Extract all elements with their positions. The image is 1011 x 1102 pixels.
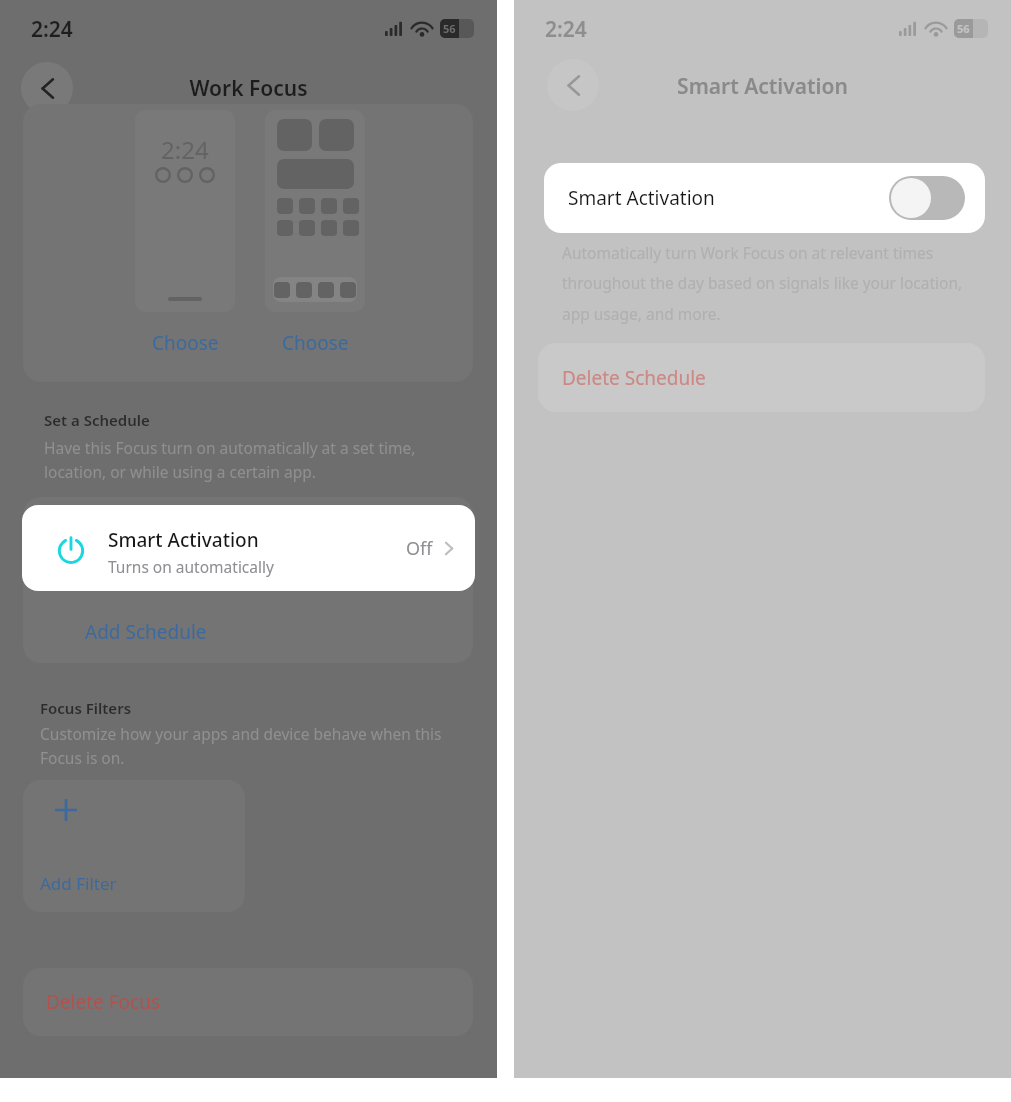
button[interactable]: Smart Activation [544,163,985,233]
staticText: Set a Schedule [44,410,150,430]
staticText: 2:24 [161,133,209,166]
button[interactable]: Delete Focus [23,968,473,1036]
staticText: 2:24 [31,15,73,44]
staticText: Smart Activation [514,72,1011,101]
staticText: Focus Filters [40,698,132,718]
staticText: Automatically turn Work Focus on at rele… [562,242,992,325]
button[interactable]: Choose [265,326,365,360]
button[interactable]: Choose [135,326,235,360]
staticText: Delete Schedule [562,365,706,391]
staticText: Smart Activation [108,527,259,553]
staticText: Choose [152,330,219,356]
staticText: Work Focus [0,74,497,103]
button[interactable] [265,110,365,312]
button[interactable]: Smart Activation [22,505,475,591]
staticText: Turns on automatically [108,556,274,577]
button[interactable]: Delete Schedule [538,343,985,412]
button[interactable]: Add Filter [23,780,245,912]
staticText: Customize how your apps and device behav… [40,723,470,768]
staticText: Add Filter [40,872,117,895]
button[interactable]: 2:24 [135,110,235,312]
staticText: 56 [443,21,456,36]
button[interactable]: Back [547,59,599,111]
staticText: 56 [957,21,970,36]
button[interactable]: Smart Activation toggle [889,176,965,220]
staticText: 2:24 [545,15,587,44]
staticText: Delete Focus [46,989,161,1015]
staticText: Add Schedule [85,619,207,645]
button[interactable]: Add Schedule [23,601,473,663]
staticText: Have this Focus turn on automatically at… [44,437,454,482]
staticText: Smart Activation [568,185,715,211]
button[interactable]: Back [21,62,73,114]
staticText: Off [406,536,433,561]
staticText: Choose [282,330,349,356]
